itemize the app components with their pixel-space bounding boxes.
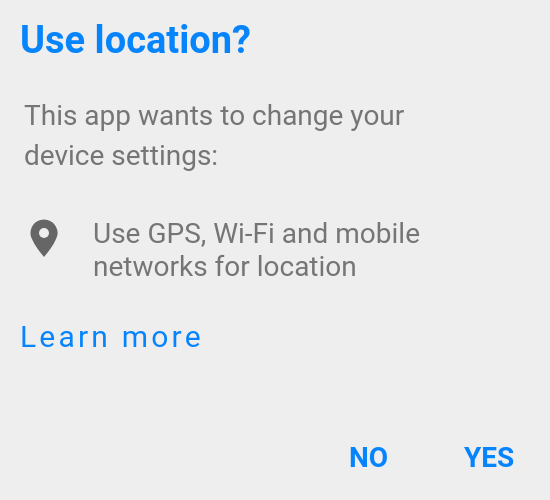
staticText: YES xyxy=(464,441,515,474)
staticText: Learn more xyxy=(20,319,204,354)
staticText: Use GPS, Wi-Fi and mobile networks for l… xyxy=(93,217,420,283)
staticText: Use location? xyxy=(20,18,251,63)
button[interactable]: YES xyxy=(448,429,531,486)
staticText: This app wants to change your device set… xyxy=(24,99,405,172)
button[interactable]: Learn more xyxy=(4,311,220,362)
button[interactable]: NO xyxy=(333,429,405,486)
staticText: NO xyxy=(349,441,389,474)
